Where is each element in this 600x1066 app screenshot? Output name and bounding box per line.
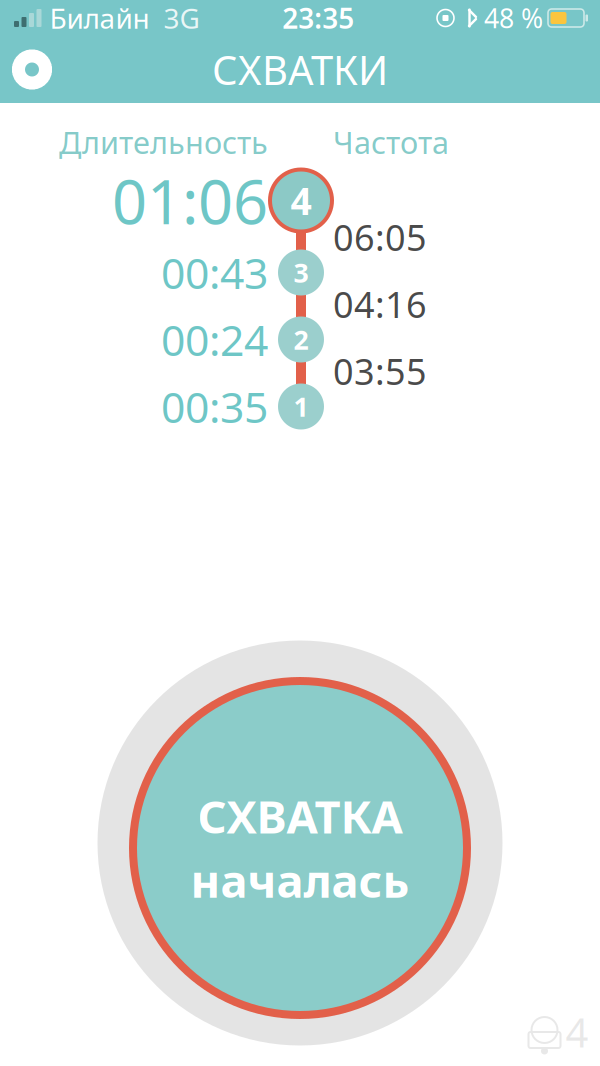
staticText: 4 [565, 1005, 588, 1058]
staticText: 00:35 [161, 378, 268, 435]
staticText: 4 [290, 176, 311, 225]
staticText: 01:06 [112, 160, 268, 241]
staticText: 3 [293, 255, 308, 290]
button[interactable]: Уведомления [520, 1006, 594, 1058]
staticText: Частота [333, 122, 449, 162]
staticText: 2 [293, 322, 308, 357]
button[interactable]: СХВАТКА [127, 675, 473, 1021]
staticText: 3G [163, 0, 199, 37]
staticText: 48 % [484, 0, 543, 36]
staticText: Билайн [49, 0, 149, 37]
staticText: 03:55 [333, 347, 427, 395]
staticText: СХВАТКИ [212, 43, 388, 96]
staticText: 00:24 [161, 311, 268, 368]
staticText: СХВАТКА [197, 786, 402, 846]
staticText: 23:35 [282, 0, 354, 37]
button[interactable]: Настройки [0, 36, 64, 103]
staticText: Длительность [59, 122, 268, 162]
staticText: 00:43 [161, 244, 268, 301]
staticText: 06:05 [333, 213, 427, 261]
staticText: 1 [293, 389, 308, 424]
staticText: 04:16 [333, 280, 427, 328]
staticText: началась [190, 850, 409, 910]
